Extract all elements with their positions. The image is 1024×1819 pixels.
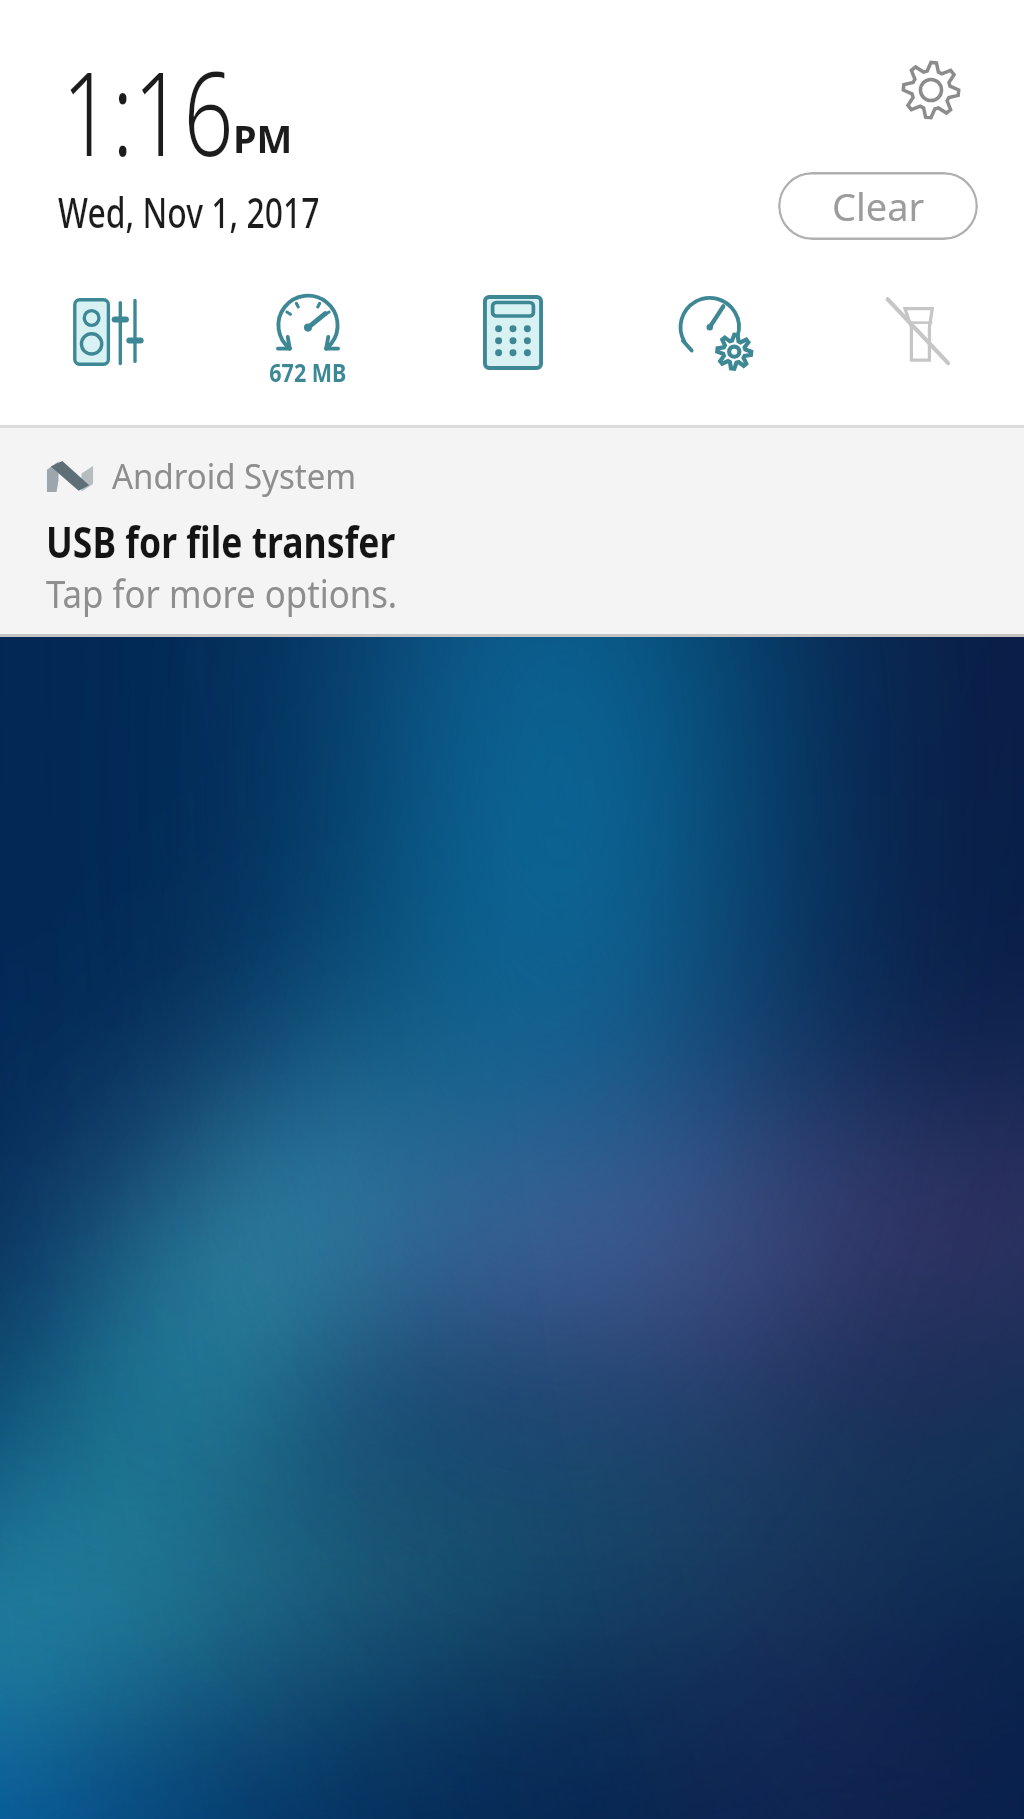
staticText: Wed, Nov 1, 2017 [58,183,320,240]
staticText: Tap for more options. [46,567,397,619]
button[interactable]: Clear [778,172,978,240]
button[interactable]: Calculator [449,268,577,396]
button[interactable]: Settings [887,46,975,134]
button[interactable]: Flashlight off [851,268,979,396]
staticText: USB for file transfer [46,512,395,571]
staticText: 672 MB [269,355,347,389]
button[interactable]: Android System [0,428,1024,637]
staticText: Android System [112,453,356,499]
button[interactable]: Clear memory [244,268,372,396]
staticText: PM [233,112,293,164]
staticText: 1:16 [62,32,234,190]
staticText: Clear [832,180,925,232]
button[interactable]: Performance mode [650,268,778,396]
button[interactable]: Sound mode [43,268,171,396]
